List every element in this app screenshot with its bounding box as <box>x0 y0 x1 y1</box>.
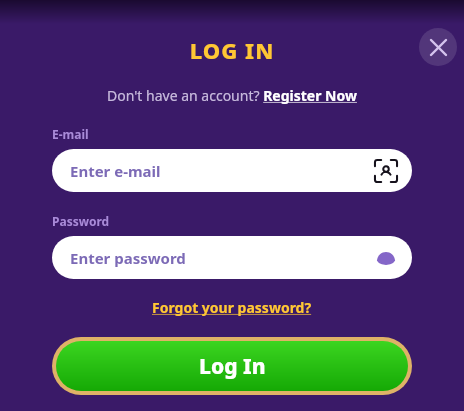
button[interactable]: Show password <box>370 242 402 274</box>
staticText: Log In <box>199 352 266 381</box>
staticText: Forgot your password? <box>152 298 312 317</box>
staticText: Enter password <box>70 248 186 268</box>
button[interactable]: Log In <box>56 341 408 391</box>
button[interactable]: Enter e-mail <box>52 149 412 192</box>
staticText: Don't have an account? Register Now <box>107 86 357 105</box>
button[interactable]: Close <box>419 28 457 66</box>
button[interactable]: Enter password <box>52 236 412 279</box>
button[interactable]: Scan face <box>370 155 402 187</box>
staticText: E-mail <box>52 126 89 142</box>
button[interactable]: Don't have an account? Register Now <box>0 86 464 105</box>
staticText: Password <box>52 213 110 229</box>
button[interactable]: Forgot your password? <box>0 298 464 317</box>
staticText: LOG IN <box>0 35 464 65</box>
staticText: Enter e-mail <box>70 161 161 181</box>
